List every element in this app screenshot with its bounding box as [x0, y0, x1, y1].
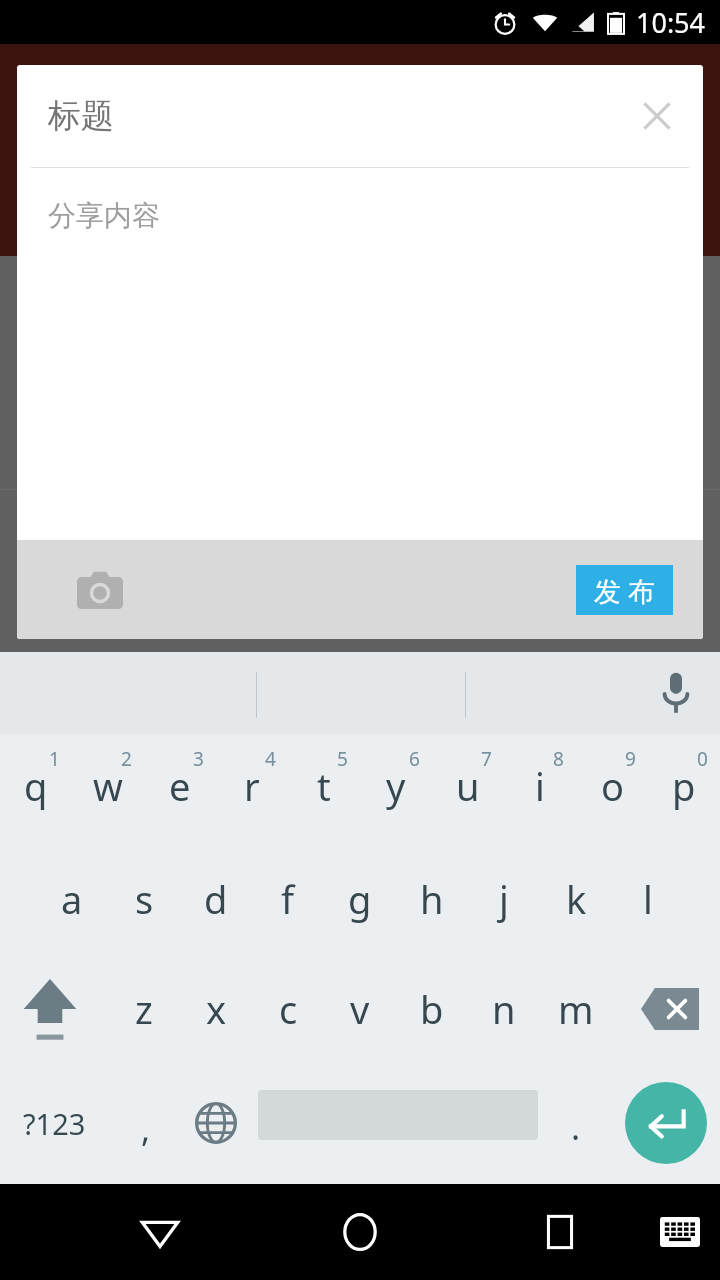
- staticText: i: [535, 760, 545, 812]
- staticText: 8: [553, 746, 564, 772]
- button[interactable]: Close: [633, 92, 681, 140]
- button[interactable]: l: [612, 844, 684, 954]
- staticText: n: [492, 983, 516, 1035]
- button[interactable]: Switch keyboard: [646, 1184, 714, 1280]
- button[interactable]: ?123: [6, 1064, 102, 1182]
- staticText: 1: [49, 746, 60, 772]
- staticText: 4: [265, 746, 276, 772]
- button[interactable]: Add photo: [70, 560, 130, 620]
- staticText: j: [499, 873, 509, 925]
- button[interactable]: 7: [432, 734, 504, 844]
- button[interactable]: 分享内容: [17, 168, 703, 540]
- button[interactable]: f: [252, 844, 324, 954]
- button[interactable]: s: [108, 844, 180, 954]
- staticText: z: [135, 983, 153, 1035]
- button[interactable]: 6: [360, 734, 432, 844]
- button[interactable]: k: [540, 844, 612, 954]
- staticText: 3: [193, 746, 204, 772]
- button[interactable]: m: [540, 954, 612, 1064]
- staticText: 0: [697, 746, 708, 772]
- button[interactable]: Home: [320, 1184, 400, 1280]
- staticText: t: [317, 760, 331, 812]
- staticText: c: [279, 983, 298, 1035]
- button[interactable]: v: [324, 954, 396, 1064]
- staticText: g: [348, 873, 372, 925]
- staticText: o: [601, 760, 624, 812]
- button[interactable]: z: [108, 954, 180, 1064]
- staticText: e: [169, 760, 191, 812]
- button[interactable]: d: [180, 844, 252, 954]
- staticText: p: [672, 760, 696, 812]
- button[interactable]: g: [324, 844, 396, 954]
- staticText: 标题: [48, 95, 114, 137]
- staticText: 2: [121, 746, 132, 772]
- button[interactable]: j: [468, 844, 540, 954]
- staticText: w: [93, 760, 123, 812]
- button[interactable]: ,: [110, 1064, 182, 1182]
- button[interactable]: 3: [144, 734, 216, 844]
- staticText: d: [204, 873, 228, 925]
- button[interactable]: n: [468, 954, 540, 1064]
- button[interactable]: Enter: [625, 1082, 707, 1164]
- button[interactable]: 4: [216, 734, 288, 844]
- staticText: x: [206, 983, 227, 1035]
- staticText: 分享内容: [48, 198, 160, 233]
- button[interactable]: Backspace: [628, 954, 712, 1064]
- staticText: 6: [409, 746, 420, 772]
- staticText: v: [350, 983, 370, 1035]
- staticText: 7: [481, 746, 492, 772]
- staticText: f: [281, 873, 295, 925]
- button[interactable]: h: [396, 844, 468, 954]
- button[interactable]: Change language: [182, 1064, 250, 1182]
- staticText: ?123: [23, 1104, 86, 1143]
- button[interactable]: 发 布: [576, 565, 673, 615]
- staticText: y: [386, 760, 406, 812]
- button[interactable]: Voice input: [648, 665, 704, 721]
- button[interactable]: c: [252, 954, 324, 1064]
- staticText: m: [558, 983, 594, 1035]
- staticText: 10:54: [636, 4, 706, 41]
- button[interactable]: Shift: [10, 954, 90, 1064]
- staticText: 9: [625, 746, 636, 772]
- staticText: ,: [141, 1106, 151, 1152]
- staticText: u: [456, 760, 480, 812]
- staticText: h: [420, 873, 444, 925]
- button[interactable]: Recent apps: [520, 1184, 600, 1280]
- staticText: l: [643, 873, 653, 925]
- button[interactable]: 8: [504, 734, 576, 844]
- staticText: 5: [337, 746, 348, 772]
- button[interactable]: a: [36, 844, 108, 954]
- button[interactable]: 5: [288, 734, 360, 844]
- button[interactable]: 2: [72, 734, 144, 844]
- staticText: b: [420, 983, 444, 1035]
- button[interactable]: 9: [576, 734, 648, 844]
- staticText: k: [566, 873, 587, 925]
- staticText: 发 布: [594, 572, 656, 609]
- staticText: r: [244, 760, 260, 812]
- button[interactable]: x: [180, 954, 252, 1064]
- staticText: .: [571, 1104, 581, 1150]
- staticText: q: [24, 760, 48, 812]
- staticText: s: [135, 873, 154, 925]
- button[interactable]: Back: [120, 1184, 200, 1280]
- staticText: a: [61, 873, 83, 925]
- button[interactable]: 0: [648, 734, 720, 844]
- button[interactable]: .: [544, 1064, 608, 1182]
- button[interactable]: 1: [0, 734, 72, 844]
- button[interactable]: b: [396, 954, 468, 1064]
